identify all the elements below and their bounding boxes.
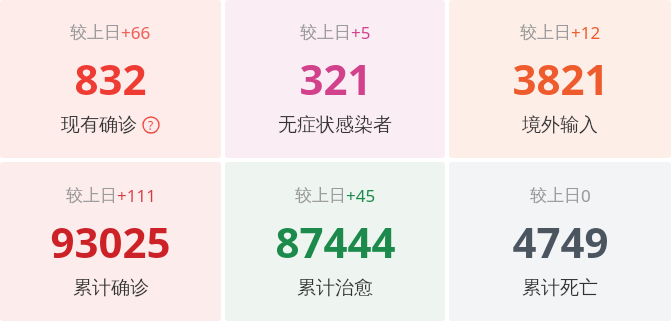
staticText: 现有确诊: [61, 113, 137, 137]
staticText: 累计确诊: [73, 276, 149, 300]
staticText: 较上日: [520, 22, 571, 43]
button[interactable]: 较上日: [0, 0, 221, 158]
staticText: 0: [581, 184, 591, 207]
staticText: 较上日: [300, 22, 351, 43]
staticText: 4749: [512, 213, 609, 270]
staticText: ?: [148, 117, 154, 133]
staticText: +45: [346, 184, 376, 207]
button[interactable]: 较上日: [225, 162, 445, 321]
button[interactable]: 较上日: [449, 162, 671, 321]
button[interactable]: 较上日: [0, 162, 221, 321]
staticText: 累计死亡: [522, 276, 598, 300]
staticText: 93025: [50, 213, 171, 270]
staticText: 87444: [275, 213, 396, 270]
staticText: 321: [299, 50, 372, 107]
button[interactable]: 帮助说明: [142, 116, 160, 134]
staticText: +12: [571, 21, 601, 44]
staticText: 较上日: [295, 185, 346, 206]
staticText: 无症状感染者: [278, 113, 392, 137]
button[interactable]: 较上日: [449, 0, 671, 158]
staticText: +111: [117, 184, 156, 207]
staticText: 较上日: [66, 185, 117, 206]
staticText: +5: [351, 21, 371, 44]
staticText: 较上日: [70, 22, 121, 43]
staticText: 累计治愈: [297, 276, 373, 300]
staticText: +66: [121, 21, 151, 44]
button[interactable]: 较上日: [225, 0, 445, 158]
staticText: 3821: [512, 50, 609, 107]
staticText: 较上日: [530, 185, 581, 206]
staticText: 832: [74, 50, 147, 107]
staticText: 境外输入: [522, 113, 598, 137]
